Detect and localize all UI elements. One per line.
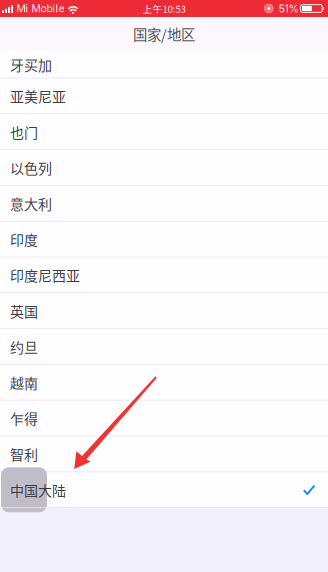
staticText: 印度 [10, 229, 38, 249]
button[interactable]: 意大利 [0, 186, 328, 222]
button[interactable]: 英国 [0, 293, 328, 329]
staticText: 意大利 [10, 193, 52, 214]
staticText: 印度尼西亚 [10, 265, 80, 285]
button[interactable]: 印度尼西亚 [0, 257, 328, 293]
staticText: 智利 [10, 444, 38, 464]
staticText: 越南 [10, 372, 38, 393]
button[interactable]: 越南 [0, 365, 328, 401]
staticText: 51% [278, 2, 298, 15]
button[interactable]: 以色列 [0, 150, 328, 186]
staticText: Mi Mobile [16, 2, 64, 15]
button[interactable]: 亚美尼亚 [0, 78, 328, 114]
button[interactable]: 约旦 [0, 329, 328, 365]
staticText: 国家/地区 [133, 24, 195, 44]
button[interactable]: 牙买加 [0, 51, 328, 78]
staticText: 也门 [10, 122, 38, 142]
staticText: 上午10:53 [142, 1, 185, 15]
staticText: 牙买加 [10, 54, 52, 74]
staticText: 英国 [10, 301, 38, 321]
button[interactable]: 智利 [0, 436, 328, 472]
button[interactable]: 乍得 [0, 401, 328, 436]
staticText: 约旦 [10, 336, 38, 357]
button[interactable]: 印度 [0, 222, 328, 257]
staticText: 中国大陆 [10, 480, 66, 500]
button[interactable]: 中国大陆 [0, 472, 328, 508]
staticText: 乍得 [10, 408, 38, 428]
staticText: 亚美尼亚 [10, 86, 66, 106]
staticText: 以色列 [10, 157, 52, 178]
button[interactable]: 也门 [0, 114, 328, 150]
